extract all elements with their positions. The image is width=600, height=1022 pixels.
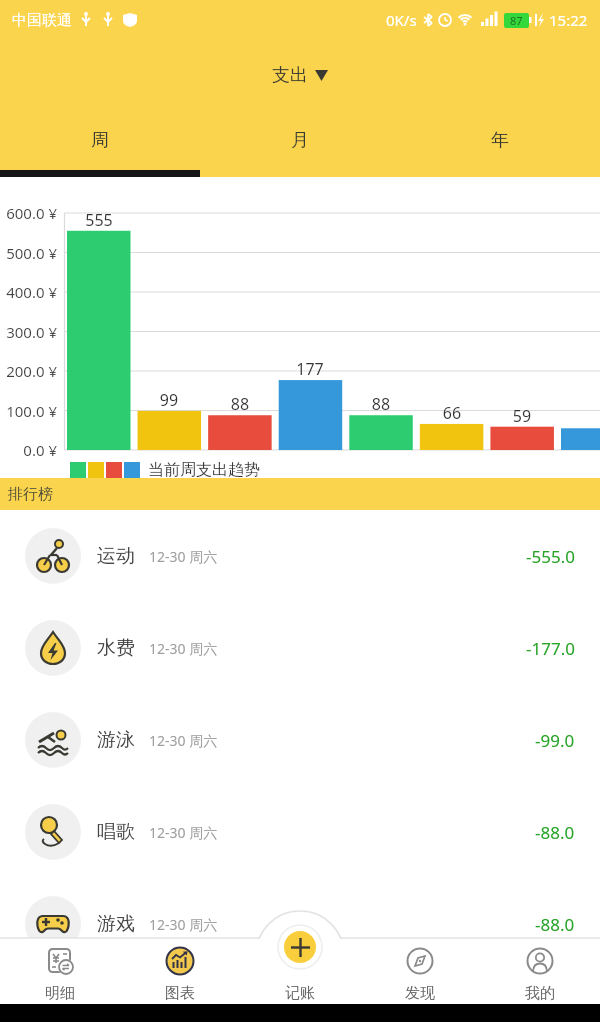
staticText: 排行榜 — [8, 485, 53, 504]
button[interactable]: 运动 — [0, 510, 600, 602]
staticText: 0.0 ¥ — [0, 440, 57, 460]
button[interactable]: 记账 — [240, 938, 360, 1004]
button[interactable]: 图表 — [120, 938, 240, 1004]
staticText: 月 — [291, 129, 309, 152]
staticText: 游泳 — [97, 728, 135, 752]
staticText: 500.0 ¥ — [0, 243, 57, 263]
staticText: 运动 — [97, 544, 135, 568]
staticText: 年 — [491, 129, 509, 152]
staticText: 555 — [69, 209, 129, 231]
staticText: 发现 — [405, 984, 435, 1003]
staticText: 图表 — [165, 984, 195, 1003]
staticText: -88.0 — [535, 821, 575, 844]
button[interactable]: 明细 — [0, 938, 120, 1004]
staticText: 12-30 周六 — [149, 915, 218, 934]
button[interactable]: 游戏 — [0, 878, 600, 970]
staticText: 66 — [422, 402, 482, 424]
staticText: -555.0 — [526, 545, 575, 568]
button[interactable]: 水费 — [0, 602, 600, 694]
staticText: 300.0 ¥ — [0, 322, 57, 342]
button[interactable]: 支出 — [272, 64, 328, 87]
staticText: 99 — [139, 389, 199, 411]
staticText: 400.0 ¥ — [0, 282, 57, 302]
button[interactable]: 唱歌 — [0, 786, 600, 878]
staticText: 59 — [492, 405, 552, 427]
staticText: 明细 — [45, 984, 75, 1003]
staticText: 我的 — [525, 984, 555, 1003]
staticText: 唱歌 — [97, 820, 135, 844]
staticText: 200.0 ¥ — [0, 361, 57, 381]
staticText: 支出 — [272, 64, 308, 87]
staticText: -99.0 — [535, 729, 575, 752]
staticText: 100.0 ¥ — [0, 401, 57, 421]
staticText: 记账 — [285, 984, 315, 1003]
staticText: 15:22 — [549, 10, 588, 30]
button[interactable]: 我的 — [480, 938, 600, 1004]
staticText: 177 — [280, 358, 340, 380]
staticText: 游戏 — [97, 912, 135, 936]
staticText: 600.0 ¥ — [0, 203, 57, 223]
staticText: -88.0 — [535, 913, 575, 936]
button[interactable] — [284, 931, 316, 963]
staticText: 87 — [510, 13, 523, 28]
staticText: -177.0 — [526, 637, 575, 660]
button[interactable]: 年 — [400, 110, 600, 170]
staticText: 12-30 周六 — [149, 731, 218, 750]
button[interactable]: 月 — [200, 110, 400, 170]
staticText: 当前周支出趋势 — [148, 460, 260, 480]
button[interactable]: 发现 — [360, 938, 480, 1004]
staticText: 周 — [91, 129, 109, 152]
button[interactable]: 周 — [0, 110, 200, 170]
button[interactable]: 游泳 — [0, 694, 600, 786]
staticText: 88 — [210, 393, 270, 415]
staticText: 0K/s — [386, 10, 417, 30]
staticText: 中国联通 — [12, 11, 72, 30]
staticText: 12-30 周六 — [149, 547, 218, 566]
staticText: 水费 — [97, 636, 135, 660]
staticText: 12-30 周六 — [149, 639, 218, 658]
staticText: 12-30 周六 — [149, 823, 218, 842]
staticText: 88 — [351, 393, 411, 415]
